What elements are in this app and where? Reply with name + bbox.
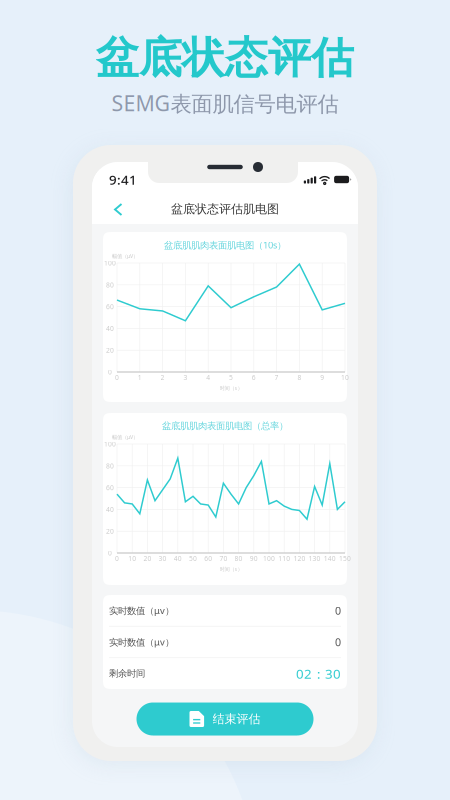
staticText: 40 [174, 554, 182, 563]
staticText: 140 [324, 554, 336, 563]
staticText: 0 [335, 635, 341, 649]
staticText: 5 [229, 373, 233, 382]
button[interactable]: Back [104, 195, 132, 223]
staticText: 50 [189, 554, 197, 563]
staticText: 时间（s） [219, 565, 242, 573]
staticText: 结束评估 [212, 712, 260, 726]
staticText: 120 [293, 554, 305, 563]
staticText: 60 [204, 554, 212, 563]
staticText: 剩余时间 [109, 668, 145, 679]
staticText: SEMG表面肌信号电评估 [111, 89, 338, 117]
staticText: 10 [341, 373, 349, 382]
staticText: 100 [104, 440, 116, 448]
button[interactable]: 结束评估 [136, 702, 313, 735]
staticText: 幅值（μV） [112, 433, 138, 441]
staticText: 100 [104, 259, 116, 267]
staticText: 80 [235, 554, 243, 563]
staticText: 60 [106, 302, 114, 311]
staticText: 实时数值（μv） [109, 636, 174, 648]
staticText: 幅值（μV） [112, 252, 138, 260]
staticText: 70 [219, 554, 227, 563]
staticText: 0 [335, 603, 341, 618]
staticText: 0 [115, 373, 119, 382]
staticText: 40 [106, 505, 114, 514]
staticText: 9:41 [109, 171, 137, 188]
staticText: 7 [275, 373, 279, 382]
staticText: 90 [250, 554, 258, 563]
staticText: 9 [320, 373, 324, 382]
staticText: 4 [206, 373, 210, 382]
staticText: 0 [108, 549, 112, 557]
staticText: 40 [106, 324, 114, 333]
staticText: 100 [263, 554, 275, 563]
staticText: 盆底状态评估 [96, 32, 354, 84]
staticText: 110 [278, 554, 290, 563]
staticText: 150 [339, 554, 351, 563]
staticText: 30 [159, 554, 167, 563]
staticText: 0 [115, 554, 119, 563]
staticText: 盆底状态评估肌电图 [171, 202, 279, 216]
staticText: 02：30 [296, 665, 341, 682]
staticText: 8 [297, 373, 301, 382]
staticText: 10 [128, 554, 136, 563]
staticText: 20 [143, 554, 151, 563]
staticText: 2 [161, 373, 165, 382]
staticText: 20 [106, 527, 114, 536]
staticText: 盆底肌肌肉表面肌电图（总率） [162, 420, 288, 432]
staticText: 时间（s） [219, 384, 242, 392]
staticText: 20 [106, 346, 114, 355]
staticText: 6 [252, 373, 256, 382]
staticText: 3 [183, 373, 187, 382]
staticText: 盆底肌肌肉表面肌电图（10s） [164, 239, 286, 251]
staticText: 80 [106, 461, 114, 470]
staticText: 80 [106, 280, 114, 289]
staticText: 60 [106, 483, 114, 492]
staticText: 0 [108, 368, 112, 376]
staticText: 1 [138, 373, 142, 382]
staticText: 实时数值（μv） [109, 604, 174, 617]
staticText: 130 [309, 554, 321, 563]
